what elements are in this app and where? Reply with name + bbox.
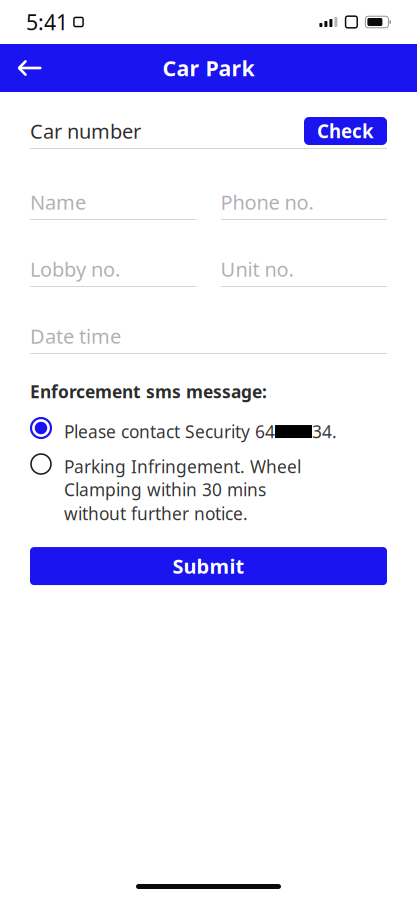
button[interactable]: Submit <box>30 547 387 585</box>
staticText: Check <box>317 119 374 143</box>
button[interactable]: Back <box>8 46 52 90</box>
staticText: Phone no. <box>220 189 313 215</box>
staticText: Lobby no. <box>30 256 120 282</box>
staticText: without further notice. <box>64 502 248 525</box>
button[interactable]: Parking Infringement. Wheel Clamping wit… <box>30 453 387 525</box>
staticText: 5:41 <box>26 8 68 36</box>
staticText: 34. <box>312 420 337 443</box>
staticText: Car Park <box>162 54 254 82</box>
staticText: Enforcement sms message: <box>30 380 267 403</box>
staticText: Unit no. <box>220 256 293 282</box>
staticText: Parking Infringement. Wheel Clamping wit… <box>64 455 301 501</box>
staticText: Date time <box>30 323 121 349</box>
button[interactable]: Please contact Security 64 <box>30 417 387 443</box>
staticText: Car number <box>30 118 141 144</box>
staticText: Please contact Security 64 <box>64 420 275 443</box>
staticText: Submit <box>172 553 244 579</box>
staticText: Name <box>30 189 86 215</box>
button[interactable]: Check <box>304 117 387 145</box>
